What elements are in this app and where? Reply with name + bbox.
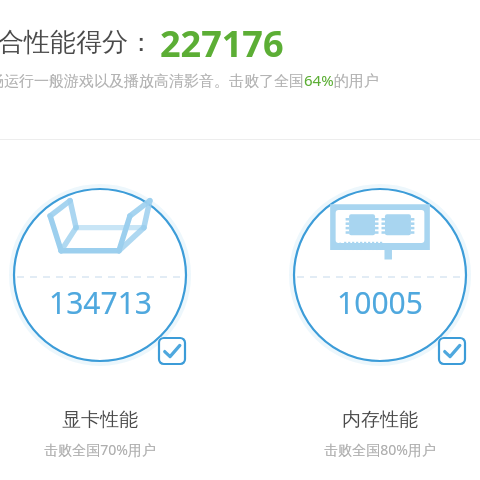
button[interactable]: Verified bbox=[158, 337, 186, 365]
staticText: 227176 bbox=[160, 19, 284, 63]
button[interactable]: 内存性能 bbox=[291, 186, 469, 364]
button[interactable]: 综合性能得分： bbox=[0, 20, 452, 64]
button[interactable]: 内存性能 bbox=[290, 408, 470, 459]
staticText: 综合性能得分： bbox=[0, 26, 154, 59]
staticText: 10005 bbox=[337, 282, 423, 323]
staticText: 134713 bbox=[49, 282, 152, 323]
button[interactable]: 显卡性能 bbox=[11, 186, 189, 364]
button[interactable]: 显卡性能 bbox=[10, 408, 190, 459]
staticText: 流畅运行一般游戏以及播放高清影音。击败了全国64%的用户 bbox=[0, 70, 379, 90]
staticText: 显卡性能 bbox=[62, 408, 138, 432]
staticText: 击败全国80%用户 bbox=[324, 440, 436, 459]
staticText: 击败全国70%用户 bbox=[44, 440, 156, 459]
staticText: 内存性能 bbox=[342, 408, 418, 432]
button[interactable]: Verified bbox=[438, 337, 466, 365]
